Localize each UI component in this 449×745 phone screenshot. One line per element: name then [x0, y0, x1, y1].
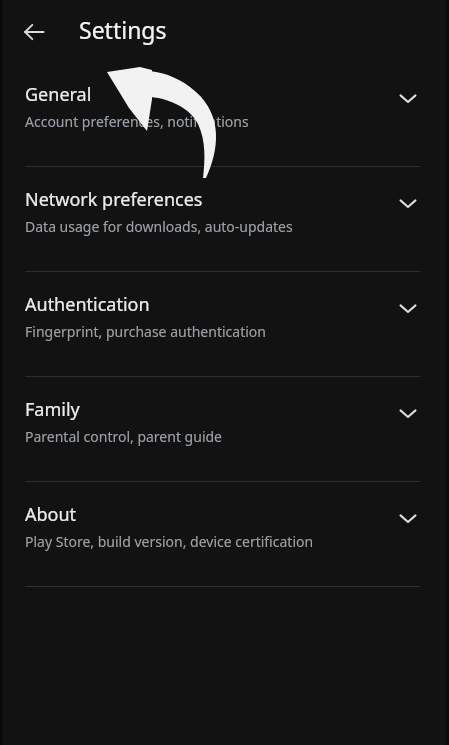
staticText: Settings — [79, 14, 167, 45]
staticText: Authentication — [25, 292, 150, 317]
other: Expand General — [390, 80, 426, 116]
button[interactable]: Family — [3, 379, 446, 479]
staticText: Family — [25, 397, 80, 422]
staticText: Account preferences, notifications — [25, 112, 249, 131]
other: Expand Family — [390, 395, 426, 431]
button[interactable]: About — [3, 484, 446, 584]
button[interactable]: General — [3, 64, 446, 164]
staticText: Network preferences — [25, 187, 203, 212]
button[interactable]: Authentication — [3, 274, 446, 374]
staticText: General — [25, 82, 92, 107]
staticText: Fingerprint, purchase authentication — [25, 322, 266, 341]
button[interactable]: Back — [12, 10, 56, 54]
other: Expand Authentication — [390, 290, 426, 326]
staticText: Data usage for downloads, auto-updates — [25, 217, 293, 236]
button[interactable]: Network preferences — [3, 169, 446, 269]
staticText: Play Store, build version, device certif… — [25, 532, 314, 551]
staticText: Parental control, parent guide — [25, 427, 222, 446]
other: Expand About — [390, 500, 426, 536]
other: Expand Network preferences — [390, 185, 426, 221]
staticText: About — [25, 502, 77, 527]
